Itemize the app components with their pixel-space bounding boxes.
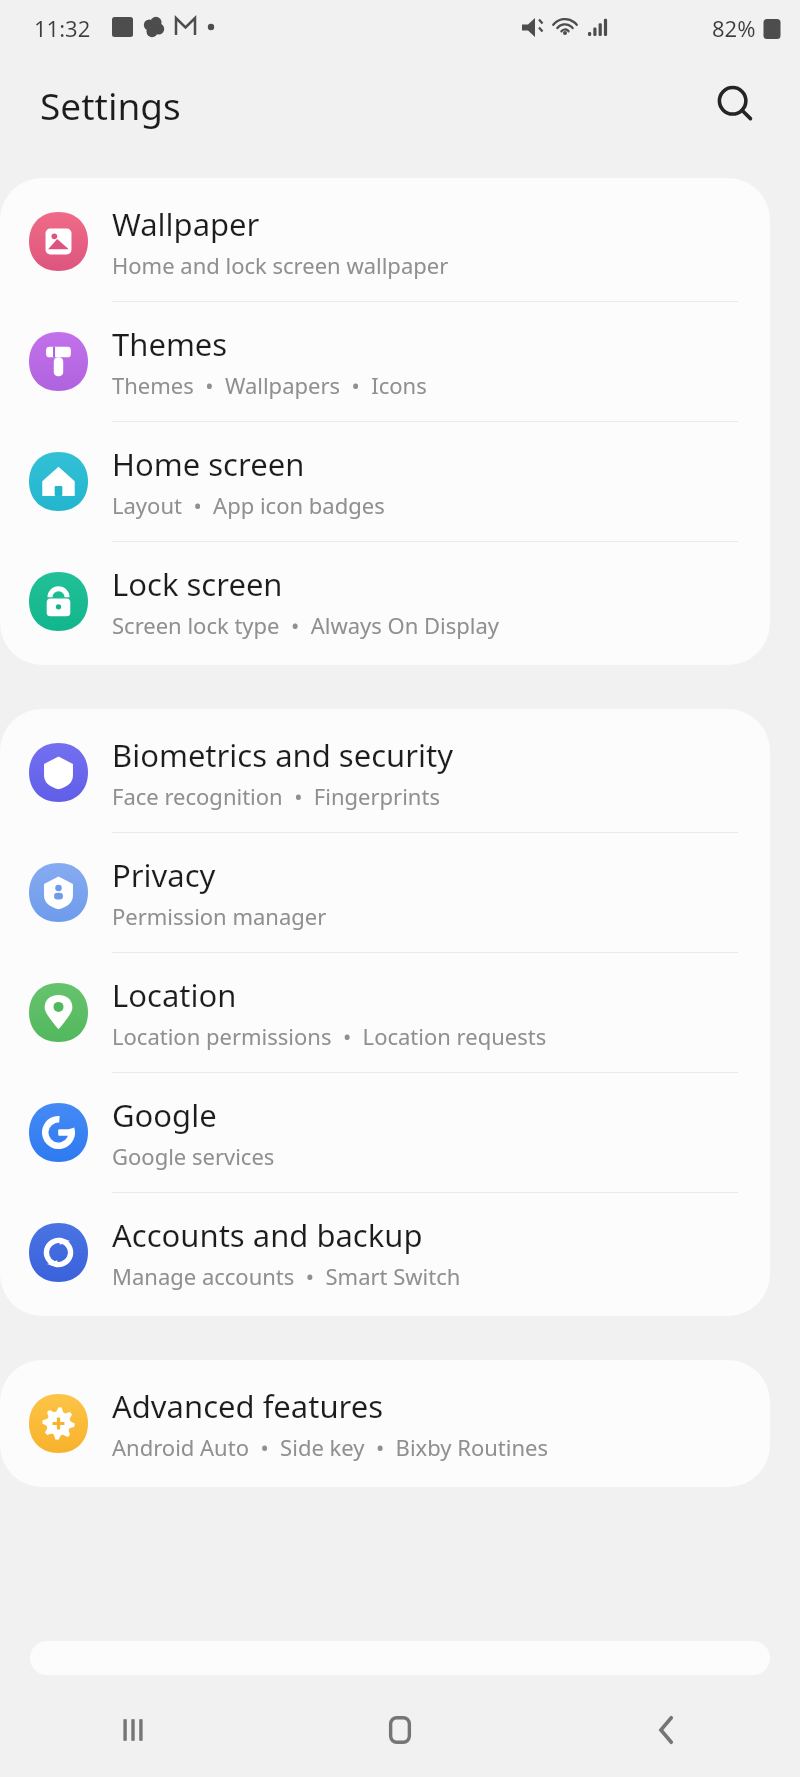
button[interactable]: Search — [698, 67, 774, 143]
button[interactable]: Themes — [0, 302, 770, 421]
staticText: Advanced features — [112, 1385, 384, 1427]
button[interactable]: Home screen — [0, 422, 770, 541]
staticText: Location — [112, 974, 237, 1016]
staticText: Permission manager — [112, 901, 327, 931]
staticText: Privacy — [112, 854, 216, 896]
button[interactable]: Wallpaper — [0, 182, 770, 301]
staticText: Face recognition • Fingerprints — [112, 781, 440, 811]
staticText: Themes • Wallpapers • Icons — [112, 370, 427, 400]
button[interactable]: Location — [0, 953, 770, 1072]
button[interactable]: Privacy — [0, 833, 770, 952]
staticText: 11:32 — [34, 13, 91, 43]
staticText: Home screen — [112, 443, 305, 485]
staticText: Manage accounts • Smart Switch — [112, 1261, 461, 1291]
staticText: Location permissions • Location requests — [112, 1021, 547, 1051]
staticText: Home and lock screen wallpaper — [112, 250, 449, 280]
button[interactable]: Advanced features — [0, 1364, 770, 1483]
button[interactable]: Home — [266, 1683, 533, 1777]
button[interactable]: Accounts and backup — [0, 1193, 770, 1312]
staticText: Google — [112, 1094, 217, 1136]
staticText: Lock screen — [112, 563, 283, 605]
staticText: Screen lock type • Always On Display — [112, 610, 500, 640]
staticText: 82% — [712, 13, 756, 43]
button[interactable]: Recents — [0, 1683, 266, 1777]
staticText: Android Auto • Side key • Bixby Routines — [112, 1432, 549, 1462]
staticText: Wallpaper — [112, 203, 260, 245]
staticText: Layout • App icon badges — [112, 490, 385, 520]
staticText: Google services — [112, 1141, 275, 1171]
button[interactable]: Back — [533, 1683, 800, 1777]
button[interactable]: Google — [0, 1073, 770, 1192]
staticText: Biometrics and security — [112, 734, 453, 776]
staticText: Themes — [112, 323, 228, 365]
button[interactable]: Biometrics and security — [0, 713, 770, 832]
staticText: Accounts and backup — [112, 1214, 423, 1256]
staticText: Settings — [40, 80, 181, 130]
button[interactable]: Lock screen — [0, 542, 770, 661]
